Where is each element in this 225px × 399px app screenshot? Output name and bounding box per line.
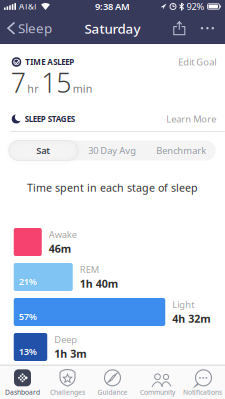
staticText: 30 Day Avg <box>88 144 136 157</box>
staticText: 57% <box>19 310 37 322</box>
staticText: REM <box>80 263 99 276</box>
staticText: min <box>73 82 93 96</box>
button[interactable]: Guidance <box>90 367 135 398</box>
button[interactable] <box>174 22 201 35</box>
staticText: 92% <box>186 0 204 13</box>
staticText: 21% <box>19 275 37 287</box>
staticText: Time spent in each stage of sleep <box>27 180 198 195</box>
staticText: Guidance <box>97 388 127 397</box>
staticText: Awake <box>49 228 77 241</box>
button[interactable]: Notifications <box>180 367 225 398</box>
button[interactable]: Community <box>135 367 180 398</box>
staticText: 13% <box>19 345 37 357</box>
staticText: Benchmark <box>156 144 206 157</box>
button[interactable]: Edit Goal <box>178 56 216 68</box>
staticText: 1h 40m <box>80 277 118 291</box>
staticText: Sat <box>36 144 50 157</box>
button[interactable]: Sleep <box>0 19 52 37</box>
staticText: Community <box>140 388 175 397</box>
button[interactable]: Dashboard <box>0 367 45 398</box>
staticText: 9:38 AM <box>95 0 130 13</box>
staticText: Notifications <box>183 388 222 397</box>
staticText: Saturday <box>84 20 140 37</box>
staticText: 15 <box>41 65 71 100</box>
button[interactable]: Benchmark <box>147 140 216 160</box>
staticText: 4h 32m <box>172 312 210 326</box>
staticText: Edit Goal <box>178 56 216 68</box>
staticText: Sleep <box>18 19 52 37</box>
staticText: Deep <box>54 333 77 346</box>
staticText: Learn More <box>166 113 216 125</box>
staticText: Challenges <box>50 388 85 397</box>
button[interactable]: 30 Day Avg <box>78 140 147 160</box>
staticText: SLEEP STAGES <box>25 114 75 124</box>
button[interactable]: Learn More <box>166 113 216 125</box>
staticText: 7 <box>11 65 26 100</box>
staticText: 46m <box>49 242 71 256</box>
staticText: hr <box>27 82 38 96</box>
staticText: Dashboard <box>5 388 40 397</box>
staticText: Light <box>172 298 194 311</box>
staticText: 1h 3m <box>54 347 86 361</box>
button[interactable]: Challenges <box>45 367 90 398</box>
staticText: AT&T <box>19 1 37 12</box>
staticText: TIME ASLEEP <box>25 57 74 67</box>
button[interactable]: Sat <box>9 140 78 160</box>
button[interactable] <box>201 27 225 29</box>
